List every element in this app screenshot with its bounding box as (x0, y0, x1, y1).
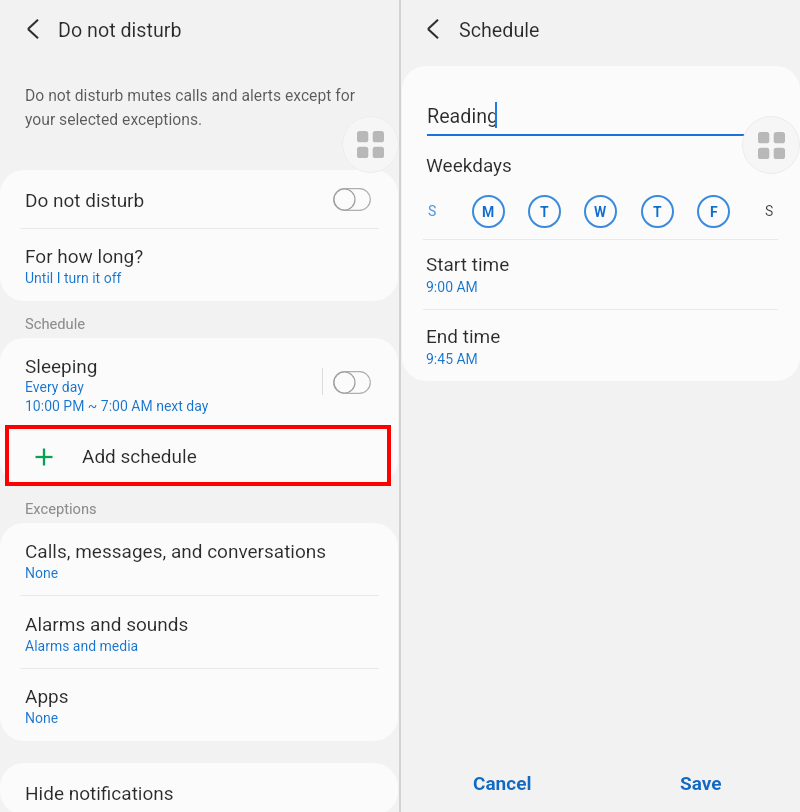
button[interactable] (441, 764, 601, 812)
button[interactable] (0, 523, 398, 595)
staticText: T (653, 204, 662, 220)
staticText: W (594, 204, 607, 220)
button[interactable]: T (640, 194, 674, 228)
button[interactable] (20, 8, 320, 52)
button[interactable]: S (415, 194, 449, 228)
button[interactable]: App grid (342, 116, 399, 173)
button[interactable]: W (583, 194, 617, 228)
staticText: Add schedule (82, 445, 197, 467)
staticText: Cancel (473, 772, 532, 794)
staticText: S (428, 203, 437, 219)
button[interactable]: Navigate up (12, 13, 44, 45)
staticText: None (25, 565, 59, 581)
staticText: Do not disturb (58, 19, 182, 42)
button[interactable]: Toggle off (333, 371, 371, 394)
staticText: Weekdays (426, 154, 512, 176)
staticText: None (25, 710, 59, 726)
staticText: Exceptions (25, 500, 97, 517)
button[interactable]: M (471, 194, 505, 228)
staticText: S (765, 203, 774, 219)
staticText: End time (426, 325, 501, 347)
button[interactable] (0, 229, 398, 301)
button[interactable]: F (696, 194, 730, 228)
staticText: Schedule (25, 315, 86, 332)
staticText: Hide notifications (25, 782, 174, 804)
staticText: Alarms and sounds (25, 613, 189, 635)
button[interactable] (0, 338, 398, 425)
button[interactable]: App grid (742, 116, 800, 174)
staticText: T (540, 204, 549, 220)
staticText: For how long? (25, 245, 144, 267)
button[interactable] (402, 310, 800, 380)
staticText: Schedule (459, 19, 540, 42)
staticText: 10:00 PM ~ 7:00 AM next day (25, 398, 209, 414)
button[interactable] (0, 596, 398, 668)
button[interactable]: Toggle off (333, 188, 371, 211)
staticText: Apps (25, 685, 69, 707)
staticText: Sleeping (25, 355, 98, 377)
button[interactable] (0, 170, 398, 228)
button[interactable] (421, 8, 721, 52)
staticText: 9:00 AM (426, 279, 478, 295)
staticText: Alarms and media (25, 638, 139, 654)
staticText: Do not disturb (25, 189, 145, 211)
button[interactable] (402, 240, 800, 310)
button[interactable] (0, 669, 398, 741)
button[interactable] (5, 425, 391, 486)
staticText: F (710, 204, 718, 220)
staticText: M (482, 204, 495, 220)
button[interactable] (620, 764, 780, 812)
staticText: Calls, messages, and conversations (25, 540, 327, 562)
staticText: Save (680, 772, 722, 794)
button[interactable] (0, 763, 398, 812)
staticText: your selected exceptions. (25, 110, 203, 128)
staticText: Until I turn it off (25, 270, 122, 286)
staticText: Do not disturb mutes calls and alerts ex… (25, 86, 355, 104)
button[interactable]: S (752, 194, 786, 228)
staticText: Reading (427, 105, 499, 128)
button[interactable]: Navigate up (412, 13, 444, 45)
staticText: Every day (25, 379, 84, 395)
staticText: 9:45 AM (426, 351, 478, 367)
staticText: Start time (426, 253, 510, 275)
button[interactable]: T (527, 194, 561, 228)
